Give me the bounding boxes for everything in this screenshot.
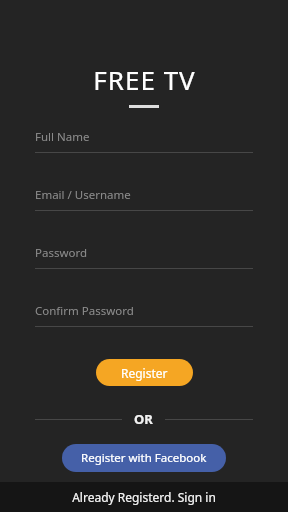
staticText: FREE TV bbox=[93, 62, 196, 97]
staticText: Register bbox=[121, 365, 168, 381]
staticText: OR bbox=[134, 410, 153, 428]
button[interactable]: Password bbox=[35, 245, 253, 269]
staticText: Confirm Password bbox=[35, 303, 134, 319]
button[interactable]: Confirm Password bbox=[35, 303, 253, 327]
button[interactable]: Register with Facebook bbox=[62, 444, 226, 472]
button[interactable]: Email / Username bbox=[35, 187, 253, 211]
staticText: Already Registerd. Sign in bbox=[72, 489, 216, 505]
staticText: Register with Facebook bbox=[81, 450, 207, 466]
staticText: Full Name bbox=[35, 129, 90, 145]
button[interactable]: Already Registerd. Sign in bbox=[0, 482, 288, 512]
button[interactable]: Register bbox=[96, 359, 193, 386]
staticText: Email / Username bbox=[35, 187, 131, 203]
button[interactable]: Full Name bbox=[35, 129, 253, 153]
staticText: Password bbox=[35, 245, 88, 261]
